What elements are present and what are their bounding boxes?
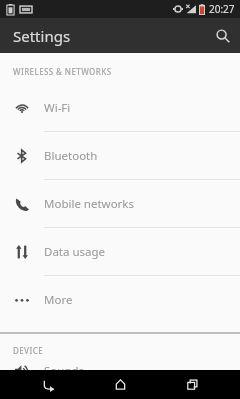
staticText: Wi-Fi — [44, 100, 71, 116]
staticText: Bluetooth — [44, 148, 98, 164]
staticText: Sounds — [44, 363, 85, 370]
staticText: More — [44, 292, 73, 308]
staticText: Data usage — [44, 244, 106, 260]
button[interactable]: Home — [96, 370, 144, 399]
button[interactable]: Back — [24, 370, 72, 399]
staticText: Mobile networks — [44, 196, 135, 212]
button[interactable]: Bluetooth — [0, 132, 240, 180]
button[interactable]: Mobile networks — [0, 180, 240, 228]
staticText: WIRELESS & NETWORKS — [13, 66, 112, 77]
staticText: DEVICE — [13, 345, 43, 356]
button[interactable]: Sounds — [0, 363, 240, 370]
staticText: Settings — [13, 26, 71, 46]
button[interactable]: Recent apps — [168, 370, 216, 399]
button[interactable]: Data usage — [0, 228, 240, 276]
button[interactable]: More — [0, 276, 240, 323]
button[interactable]: Wi-Fi — [0, 84, 240, 132]
button[interactable]: Search — [205, 18, 240, 53]
staticText: 20:27 — [209, 2, 235, 16]
